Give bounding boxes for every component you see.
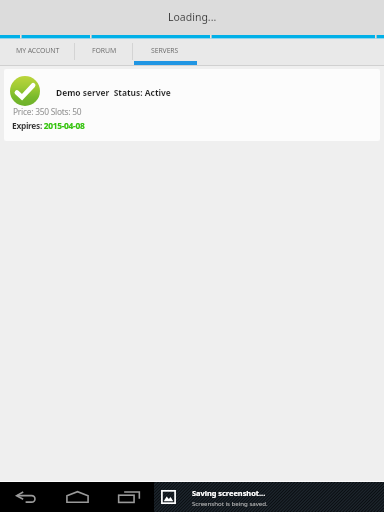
button[interactable]: FORUM [75,39,133,66]
button[interactable]: Home [52,482,103,512]
staticText: Price: 350 Slots: 50 [13,106,82,117]
staticText: MY ACCOUNT [16,46,60,55]
button[interactable]: Recent apps [103,482,154,512]
staticText: Loading... [168,10,217,24]
staticText: SERVERS [151,46,179,55]
staticText: FORUM [92,46,117,55]
button[interactable]: SERVERS [133,39,197,66]
button[interactable]: Saving screenshot... [154,482,384,512]
staticText: Demo server Status: Active [56,87,171,98]
staticText: Expires: 2015-04-08 [12,120,85,131]
button[interactable]: Demo server Status: Active [4,69,380,141]
button[interactable]: Back [0,482,52,512]
staticText: Screenshot is being saved. [192,499,268,507]
button[interactable]: MY ACCOUNT [0,39,75,66]
staticText: Saving screenshot... [192,488,266,498]
